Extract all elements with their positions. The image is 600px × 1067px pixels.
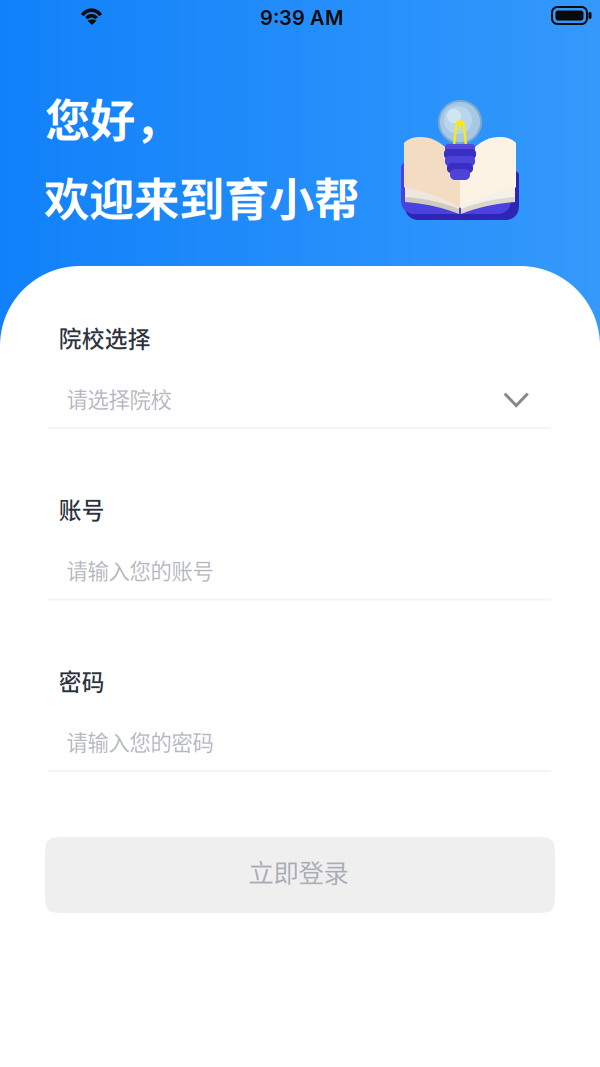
staticText: 您好， [45, 85, 180, 151]
staticText: 密码 [59, 664, 105, 697]
button[interactable]: 请选择院校 [0, 0, 600, 1067]
button[interactable]: 请输入您的密码 [0, 0, 600, 1067]
staticText: 9:39 AM [260, 5, 343, 30]
staticText: 请输入您的密码 [67, 726, 214, 757]
staticText: 请输入您的账号 [67, 554, 214, 585]
staticText: 欢迎来到育小帮 [44, 164, 359, 230]
staticText: 立即登录 [248, 853, 348, 890]
button[interactable]: 请输入您的账号 [0, 0, 600, 1067]
staticText: 请选择院校 [67, 383, 172, 414]
staticText: 账号 [59, 492, 105, 525]
button[interactable]: 立即登录 [0, 0, 600, 1067]
staticText: 院校选择 [59, 321, 151, 354]
